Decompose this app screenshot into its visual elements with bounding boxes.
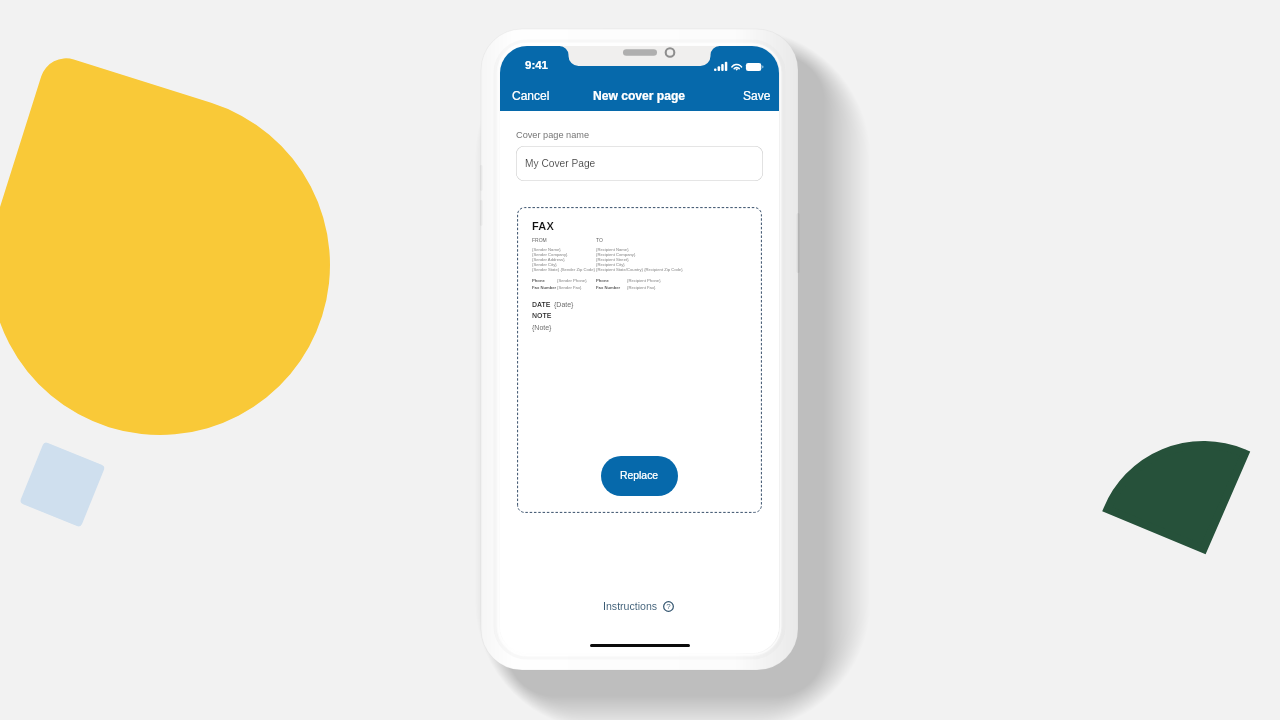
staticText: {Recipient State/Country} {Recipient Zip…: [596, 267, 683, 272]
staticText: TO: [596, 237, 603, 243]
staticText: Fax Number: [596, 285, 621, 290]
staticText: {Sender Address}: [532, 257, 565, 262]
staticText: Phone: [596, 278, 609, 283]
button[interactable]: Replace: [601, 456, 678, 496]
staticText: {Recipient Street}: [596, 257, 629, 262]
staticText: NOTE: [532, 312, 552, 320]
staticText: {Sender Company}: [532, 252, 568, 257]
staticText: {Sender Name}: [532, 247, 561, 252]
staticText: Replace: [620, 470, 659, 482]
staticText: {Sender Fax}: [557, 285, 582, 290]
staticText: Fax Number: [532, 285, 557, 290]
button[interactable]: Instructions: [600, 597, 677, 615]
button[interactable]: My Cover Page: [516, 146, 763, 181]
staticText: {Date}: [554, 301, 574, 309]
staticText: {Recipient Phone}: [627, 278, 661, 283]
staticText: {Recipient Name}: [596, 247, 629, 252]
staticText: {Recipient City}: [596, 262, 625, 267]
staticText: {Recipient Company}: [596, 252, 636, 257]
staticText: Instructions: [603, 600, 658, 612]
staticText: Cancel: [512, 89, 550, 102]
staticText: {Sender State} {Sender Zip Code}: [532, 267, 595, 272]
staticText: My Cover Page: [525, 158, 596, 169]
staticText: 9:41: [525, 59, 549, 72]
button[interactable]: Cancel: [509, 84, 553, 107]
staticText: New cover page: [593, 89, 686, 103]
staticText: {Sender Phone}: [557, 278, 587, 283]
staticText: FROM: [532, 237, 547, 243]
staticText: Save: [743, 89, 771, 102]
staticText: FAX: [532, 220, 554, 232]
staticText: {Recipient Fax}: [627, 285, 656, 290]
staticText: {Note}: [532, 324, 552, 332]
staticText: Phone: [532, 278, 545, 283]
button[interactable]: Save: [740, 84, 774, 107]
staticText: {Sender City}: [532, 262, 557, 267]
staticText: DATE: [532, 301, 551, 309]
staticText: Cover page name: [516, 130, 590, 140]
staticText: ?: [666, 602, 671, 611]
